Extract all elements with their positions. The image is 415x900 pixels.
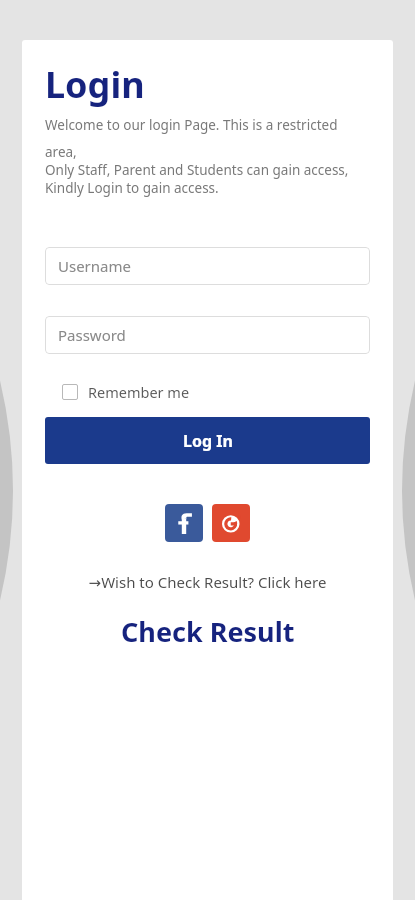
staticText: Remember me [88, 382, 190, 402]
staticText: Log In [183, 430, 233, 452]
staticText: Username [58, 256, 131, 276]
staticText: Password [58, 325, 126, 345]
staticText: Check Result [121, 613, 295, 650]
staticText: Kindly Login to gain access. [45, 179, 219, 197]
button[interactable]: Check Result [45, 613, 370, 650]
button[interactable]: Remember me [60, 380, 192, 404]
button[interactable]: Username [45, 247, 370, 285]
staticText: →Wish to Check Result? Click here [80, 572, 335, 592]
button[interactable]: Sign in with Google Plus [212, 504, 250, 542]
button[interactable]: Sign in with Facebook [165, 504, 203, 542]
staticText: Only Staff, Parent and Students can gain… [45, 161, 349, 179]
button[interactable]: Log In [45, 417, 370, 464]
staticText: Login [45, 60, 145, 109]
staticText: Welcome to our login Page. This is a res… [45, 116, 370, 161]
button[interactable]: Password [45, 316, 370, 354]
button[interactable]: →Wish to Check Result? Click here [45, 572, 370, 592]
